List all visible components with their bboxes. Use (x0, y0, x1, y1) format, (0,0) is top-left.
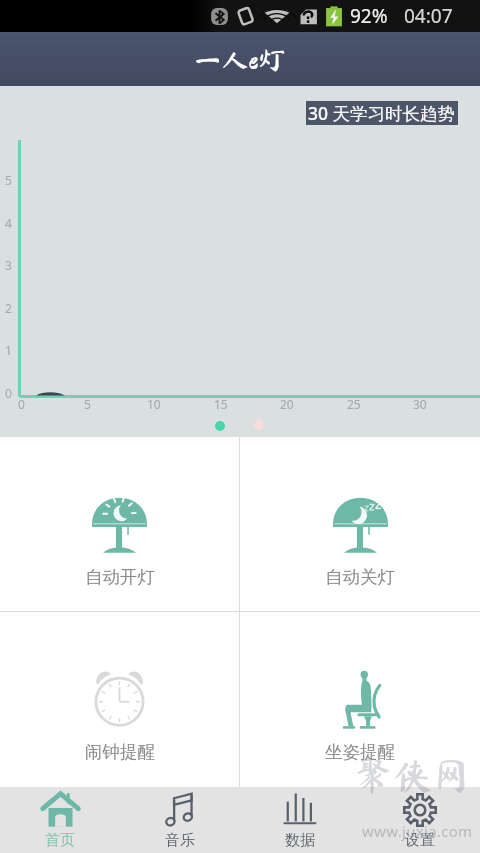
staticText: 30 (413, 396, 427, 412)
staticText: 3 (5, 257, 12, 273)
staticText: 数据 (285, 831, 315, 850)
staticText: 2 (5, 300, 12, 316)
button[interactable]: 自动关灯 (240, 437, 480, 611)
staticText: 4 (5, 215, 12, 231)
staticText: 设置 (405, 831, 435, 850)
staticText: 25 (347, 396, 361, 412)
staticText: 闹钟提醒 (85, 741, 155, 763)
staticText: 15 (214, 396, 228, 412)
button[interactable]: Music (120, 787, 240, 853)
staticText: 5 (5, 172, 12, 188)
staticText: 0 (18, 396, 25, 412)
button[interactable]: Settings (360, 787, 480, 853)
staticText: 首页 (45, 831, 75, 850)
staticText: 一人e灯 (194, 46, 287, 73)
staticText: 92% (350, 3, 388, 29)
staticText: 自动关灯 (325, 566, 395, 588)
button[interactable]: 闹钟提醒 (0, 612, 239, 787)
staticText: 音乐 (165, 831, 195, 850)
button[interactable]: Data (240, 787, 360, 853)
staticText: 20 (280, 396, 294, 412)
staticText: 04:07 (404, 3, 453, 29)
staticText: 自动开灯 (85, 566, 155, 588)
staticText: www.juxia.com (362, 821, 473, 841)
staticText: 0 (5, 385, 12, 401)
staticText: 聚侠网 (354, 756, 472, 795)
staticText: 1 (5, 342, 12, 358)
button[interactable]: 坐姿提醒 (240, 612, 480, 787)
button[interactable]: 自动开灯 (0, 437, 239, 611)
button[interactable]: Home (0, 787, 120, 853)
staticText: 坐姿提醒 (325, 741, 395, 763)
staticText: 30 天学习时长趋势 (308, 101, 456, 125)
staticText: 5 (84, 396, 91, 412)
staticText: 10 (147, 396, 161, 412)
